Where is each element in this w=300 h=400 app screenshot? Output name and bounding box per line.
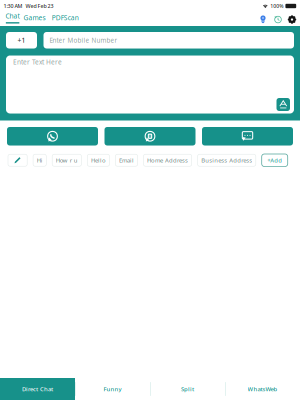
button[interactable]: Funny (75, 378, 150, 400)
button[interactable]: History (270, 12, 285, 26)
button[interactable]: WhatsWeb (225, 378, 300, 400)
button[interactable]: Send on WhatsApp Business (104, 127, 195, 145)
button[interactable]: Business Address (198, 154, 256, 166)
staticText: PDFScan (52, 13, 79, 22)
staticText: Hello (91, 156, 106, 164)
staticText: How r u (56, 156, 78, 164)
button[interactable]: Settings (285, 12, 298, 26)
staticText: Enter Mobile Number (49, 36, 117, 44)
button[interactable]: Tips (255, 12, 270, 26)
button[interactable]: Hello (87, 154, 109, 166)
staticText: Direct Chat (22, 385, 53, 393)
staticText: Wed Feb 23 (26, 2, 54, 10)
staticText: Home Address (147, 156, 188, 164)
button[interactable]: Chat (5, 11, 20, 27)
staticText: 1:30 AM (4, 2, 23, 10)
button[interactable]: Send on WhatsApp (7, 127, 98, 145)
button[interactable]: How r u (52, 154, 81, 166)
button[interactable]: Hi (33, 154, 46, 166)
staticText: +1 (17, 36, 25, 45)
staticText: Funny (103, 385, 121, 393)
button[interactable]: Direct Chat (0, 378, 75, 400)
staticText: Email (119, 156, 134, 164)
button[interactable]: Split (150, 378, 225, 400)
staticText: Hi (37, 156, 43, 164)
staticText: Business Address (201, 156, 252, 164)
button[interactable]: Edit quick replies (8, 154, 27, 166)
button[interactable]: Send SMS (202, 127, 293, 145)
staticText: Chat (6, 11, 20, 21)
staticText: Split (181, 385, 194, 393)
staticText: Enter Text Here (13, 57, 62, 66)
button[interactable]: PDFScan (49, 13, 82, 27)
staticText: 100% (270, 2, 283, 9)
button[interactable]: Text formatting (276, 98, 290, 111)
button[interactable]: Home Address (143, 154, 192, 166)
staticText: WhatsWeb (247, 385, 277, 393)
button[interactable]: Games (20, 13, 49, 27)
button[interactable]: +1 (6, 32, 37, 48)
staticText: Games (23, 13, 45, 22)
button[interactable]: +Add (262, 154, 288, 166)
staticText: +Add (267, 156, 282, 164)
button[interactable]: Email (115, 154, 138, 166)
